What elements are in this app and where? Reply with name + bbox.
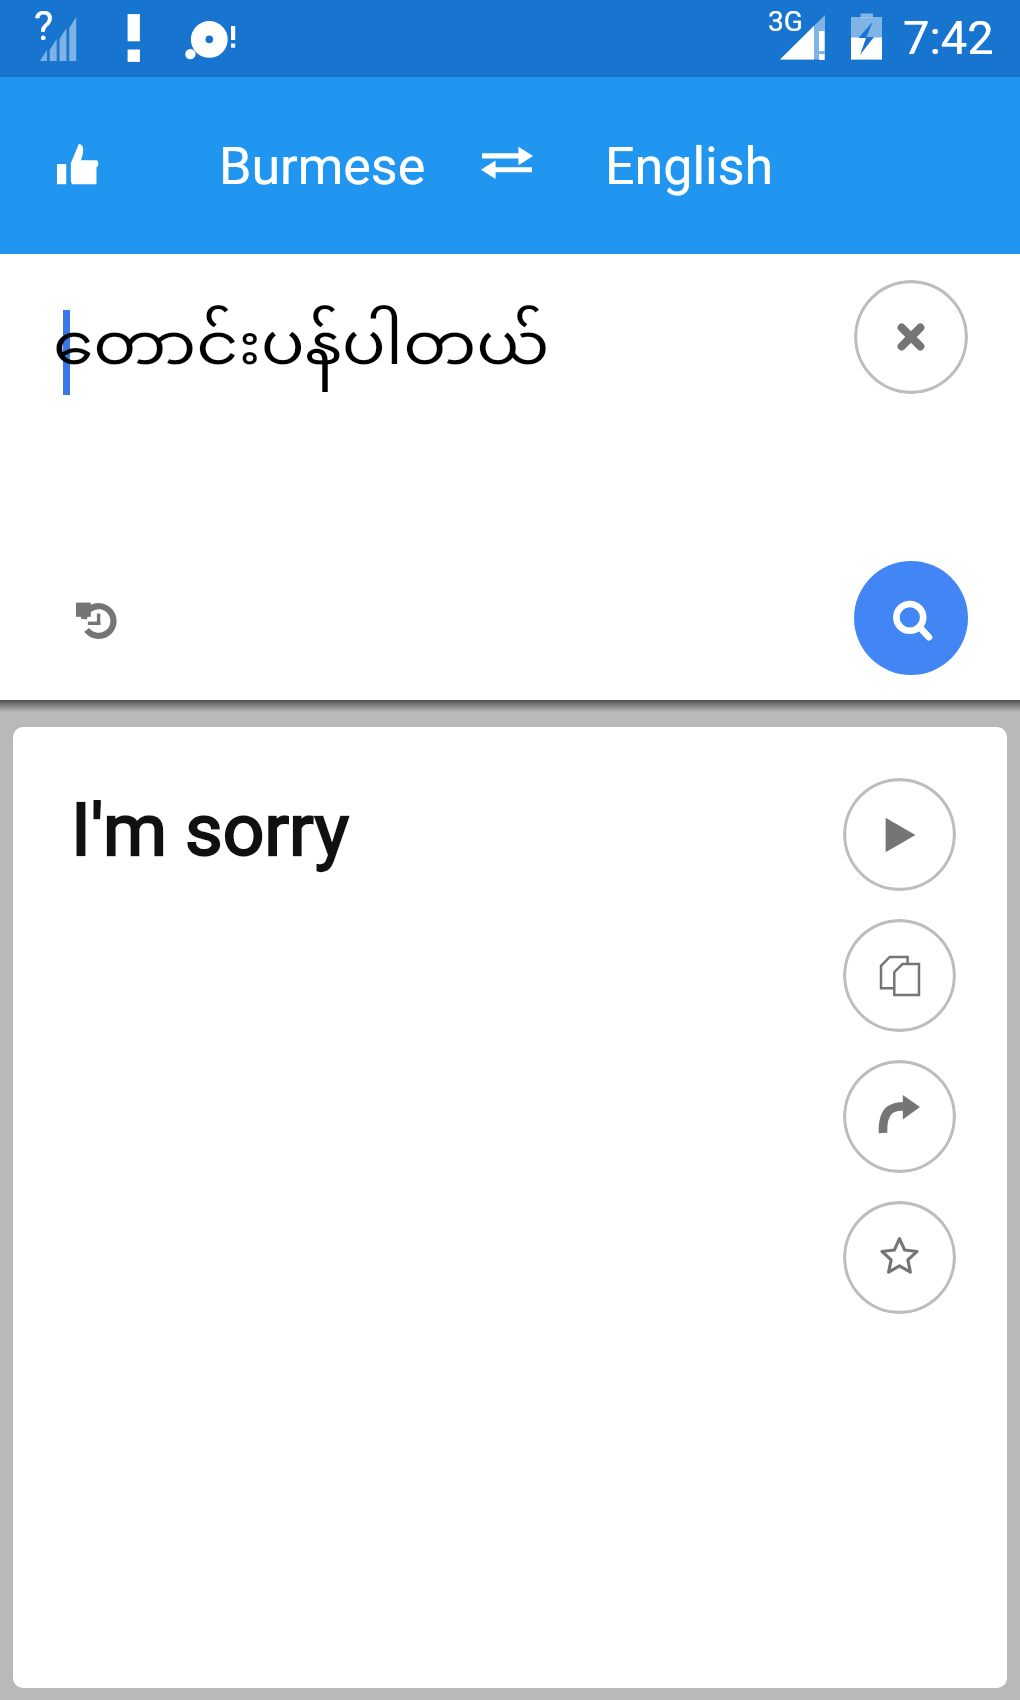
button[interactable]: I'm sorry (13, 727, 1007, 1688)
button[interactable]: Clear text (854, 280, 968, 394)
staticText: တောင်းပန်ပါတယ် (53, 305, 550, 394)
staticText: English (605, 136, 774, 197)
staticText: ? (34, 2, 54, 50)
button[interactable]: Save to phrasebook (843, 1201, 956, 1314)
staticText: I'm sorry (71, 787, 349, 873)
staticText: 7:42 (903, 10, 994, 65)
staticText: Burmese (219, 136, 426, 197)
button[interactable]: Share (843, 1060, 956, 1173)
button[interactable]: Rate this translation (26, 114, 130, 218)
button[interactable]: English (569, 110, 810, 222)
button[interactable]: Swap languages (452, 110, 564, 222)
staticText: 3G (768, 5, 803, 38)
button[interactable]: Listen (843, 778, 956, 891)
button[interactable]: Copy (843, 919, 956, 1032)
button[interactable]: History (44, 568, 148, 672)
button[interactable]: Search (854, 561, 968, 675)
button[interactable]: Burmese (183, 110, 462, 222)
